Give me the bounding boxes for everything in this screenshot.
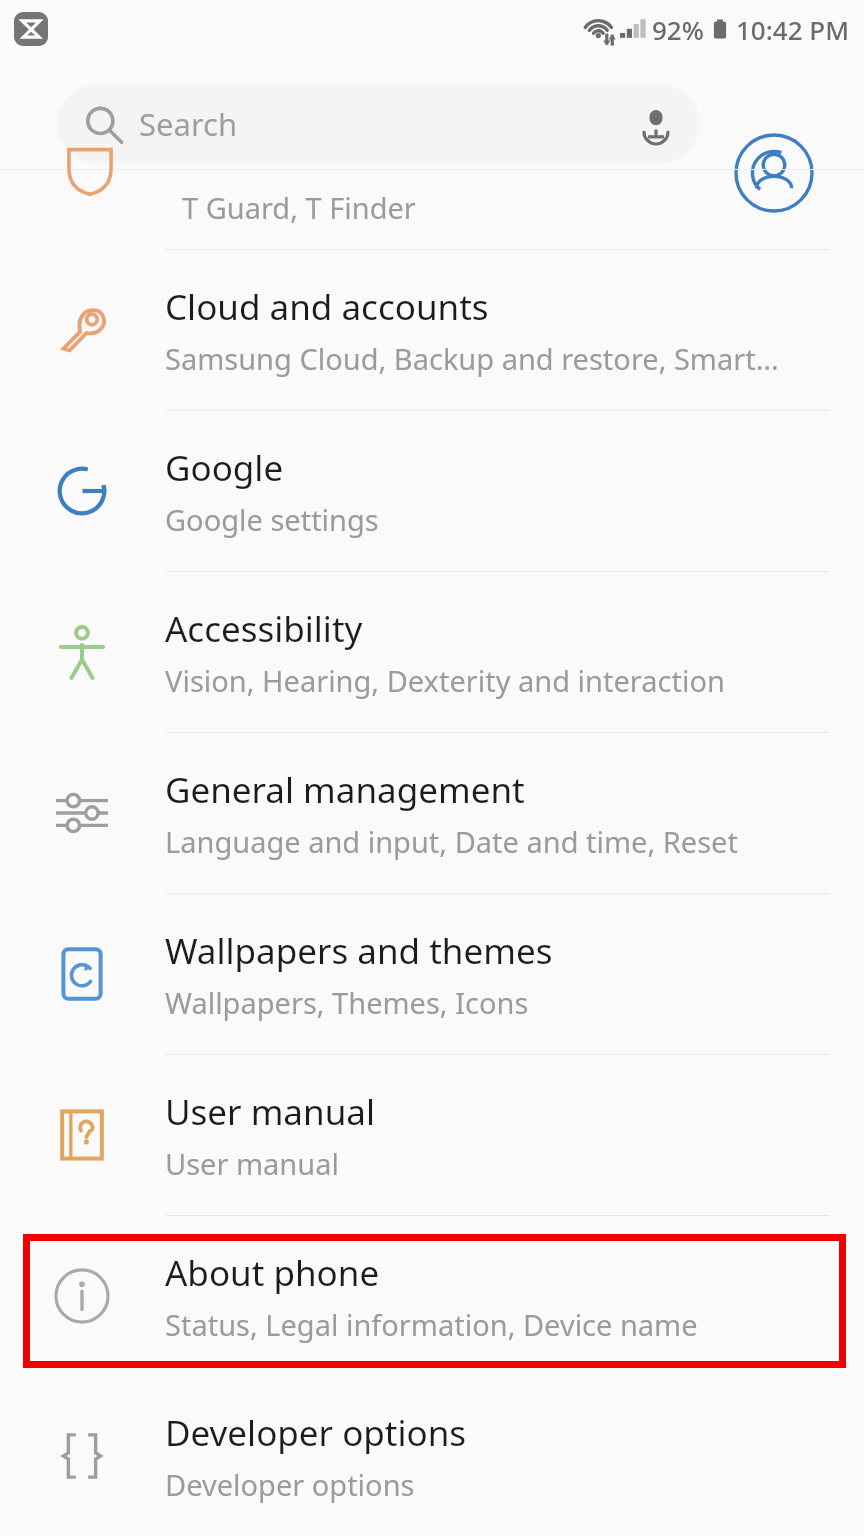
staticText: Samsung Cloud, Backup and restore, Smart…	[165, 339, 779, 378]
button[interactable]: App icon	[14, 12, 48, 46]
staticText: Accessibility	[165, 605, 363, 653]
button[interactable]: Accessibility	[0, 572, 864, 732]
button[interactable]: User manual	[0, 1055, 864, 1215]
staticText: Search	[139, 103, 238, 145]
staticText: About phone	[165, 1249, 380, 1297]
button[interactable]: Search	[57, 85, 700, 163]
button[interactable]: General management	[0, 733, 864, 893]
button[interactable]: About phone	[0, 1216, 864, 1376]
button[interactable]: Developer options	[0, 1376, 864, 1536]
staticText: T Guard, T Finder	[182, 188, 416, 227]
button[interactable]: Google	[0, 411, 864, 571]
button[interactable]: Account	[734, 133, 814, 213]
staticText: Vision, Hearing, Dexterity and interacti…	[165, 661, 725, 700]
staticText: 10:42 PM	[736, 12, 850, 47]
staticText: Status, Legal information, Device name	[165, 1305, 698, 1344]
staticText: Language and input, Date and time, Reset	[165, 822, 738, 861]
staticText: Wallpapers and themes	[165, 927, 553, 975]
staticText: User manual	[165, 1144, 339, 1183]
staticText: Google	[165, 444, 284, 492]
staticText: User manual	[165, 1088, 375, 1136]
staticText: Cloud and accounts	[165, 283, 489, 331]
staticText: Developer options	[165, 1465, 415, 1504]
button[interactable]: About phone highlighted	[23, 1234, 846, 1368]
button[interactable]: Wallpapers and themes	[0, 894, 864, 1054]
button[interactable]: Cloud and accounts	[0, 250, 864, 410]
button[interactable]: T Guard, T Finder	[0, 170, 864, 249]
staticText: 92%	[652, 12, 704, 47]
staticText: Google settings	[165, 500, 379, 539]
staticText: General management	[165, 766, 525, 814]
staticText: Wallpapers, Themes, Icons	[165, 983, 529, 1022]
staticText: Developer options	[165, 1409, 467, 1457]
